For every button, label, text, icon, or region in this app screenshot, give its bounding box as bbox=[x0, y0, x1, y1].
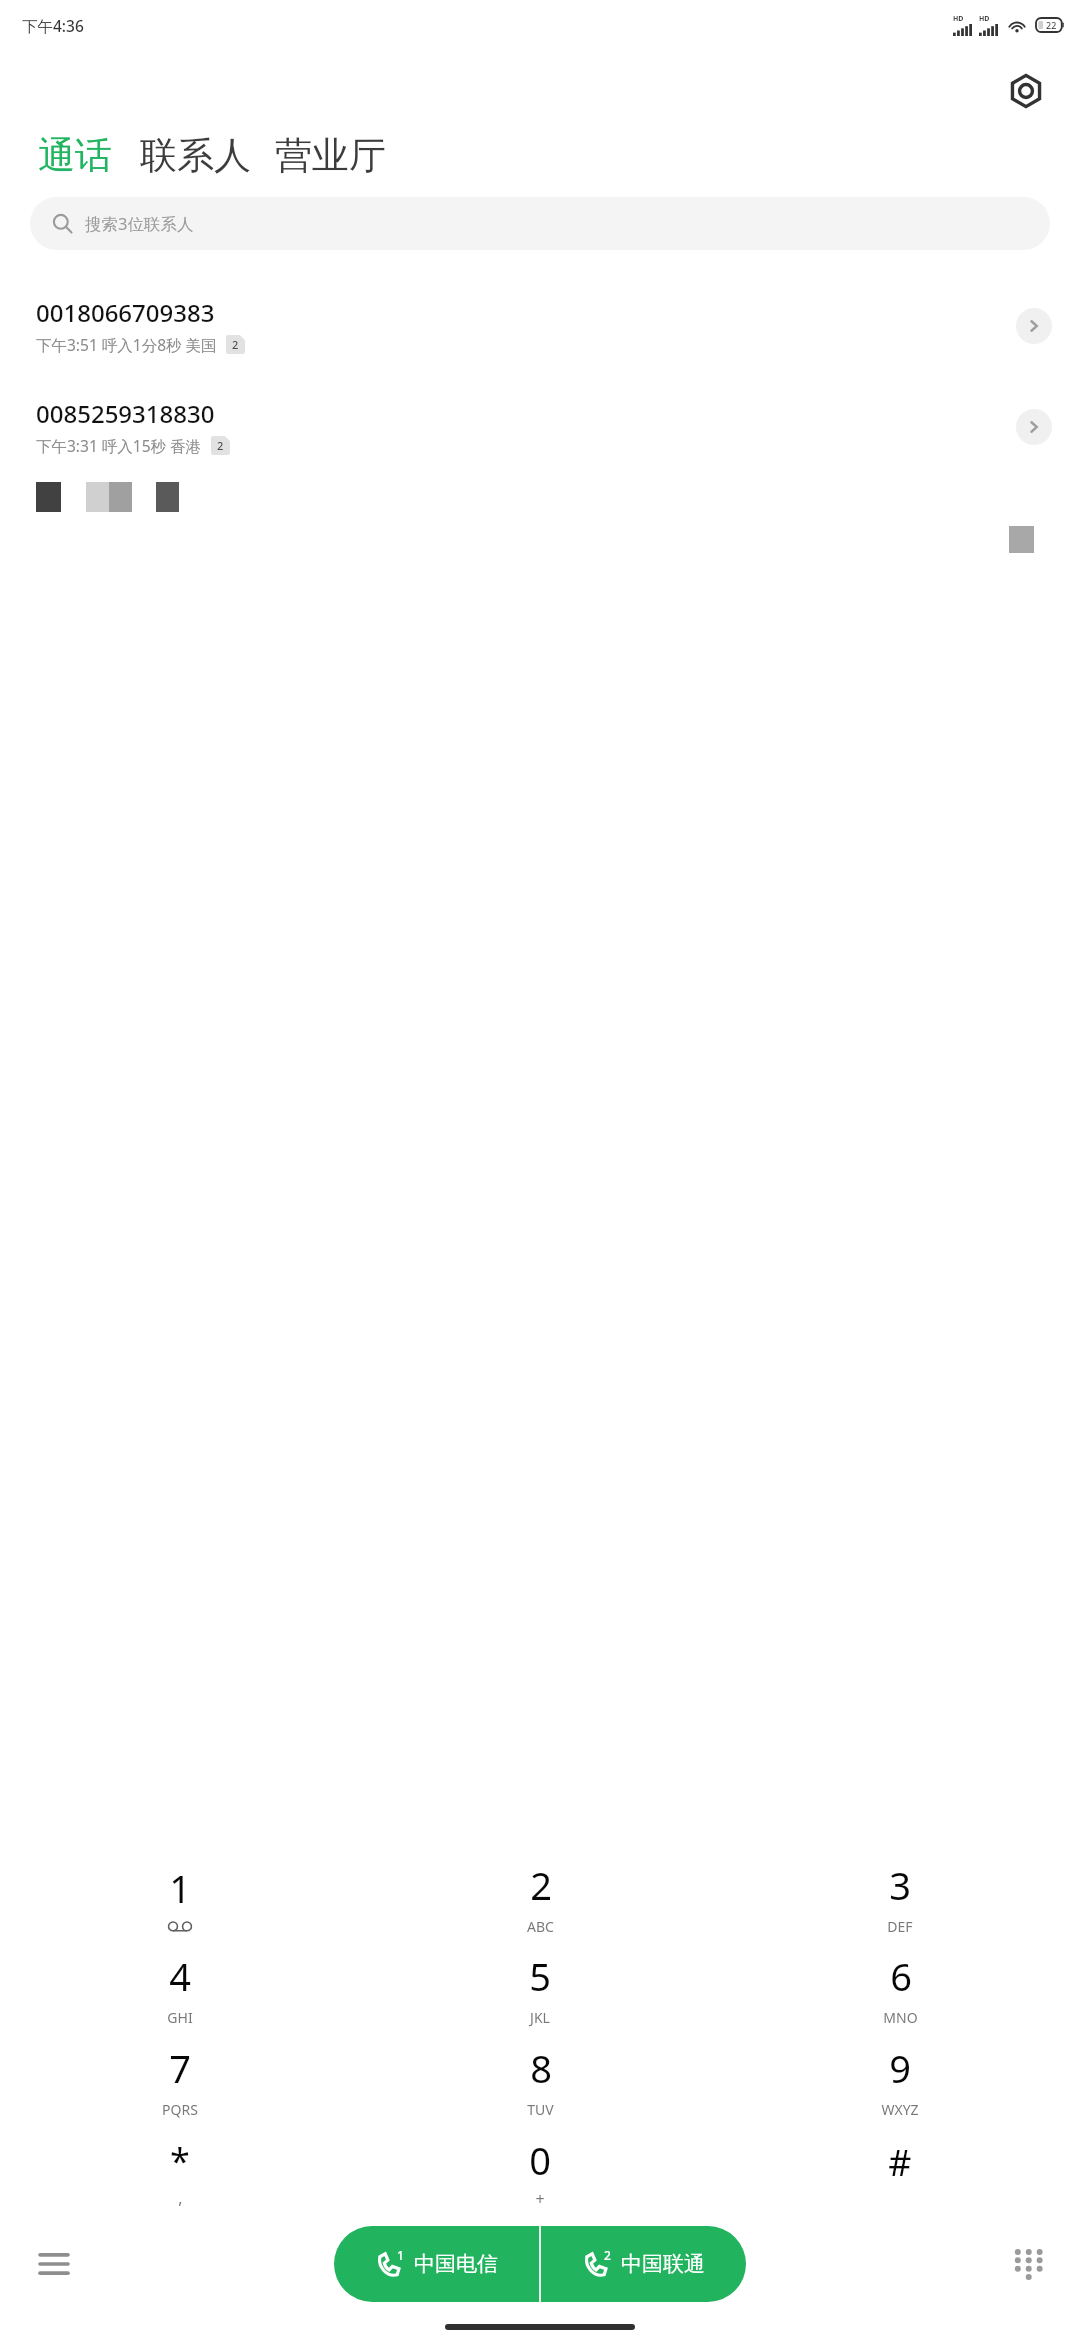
staticText: 联系人 bbox=[140, 132, 251, 179]
staticText: 1 bbox=[169, 1862, 191, 1914]
staticText: 0 bbox=[529, 2134, 551, 2186]
staticText: GHI bbox=[167, 2008, 193, 2027]
staticText: 2 bbox=[530, 1859, 552, 1911]
staticText: + bbox=[535, 2188, 545, 2210]
staticText: 6 bbox=[890, 1950, 912, 2002]
button[interactable]: 4 bbox=[0, 1943, 360, 2034]
button[interactable]: 0085259318830 bbox=[0, 391, 1080, 462]
staticText: 通话 bbox=[38, 132, 112, 179]
button[interactable]: 联系人 bbox=[140, 132, 251, 179]
staticText: # bbox=[888, 2138, 912, 2187]
staticText: TUV bbox=[527, 2100, 554, 2119]
staticText: 22 bbox=[1046, 19, 1057, 31]
staticText: ABC bbox=[527, 1917, 554, 1936]
staticText: 2 bbox=[232, 337, 239, 352]
staticText: WXYZ bbox=[881, 2100, 919, 2119]
staticText: MNO bbox=[883, 2008, 918, 2027]
button[interactable]: Settings bbox=[1002, 67, 1050, 115]
button[interactable]: 9 bbox=[720, 2034, 1080, 2126]
button[interactable]: 2 bbox=[541, 2226, 746, 2302]
staticText: 8 bbox=[530, 2042, 552, 2094]
staticText: 0018066709383 bbox=[36, 296, 215, 329]
button[interactable]: 1 bbox=[334, 2226, 539, 2302]
button[interactable]: 1 bbox=[0, 1852, 360, 1943]
staticText: JKL bbox=[530, 2008, 550, 2027]
button[interactable]: Dialpad bbox=[990, 2228, 1062, 2300]
button[interactable]: * bbox=[0, 2126, 360, 2218]
button[interactable]: 2 bbox=[360, 1852, 720, 1943]
button[interactable]: 营业厅 bbox=[275, 132, 386, 179]
button[interactable]: 搜索3位联系人 bbox=[30, 197, 1050, 250]
staticText: 中国联通 bbox=[621, 2251, 705, 2277]
staticText: 4 bbox=[169, 1950, 191, 2002]
button[interactable]: 0018066709383 bbox=[0, 290, 1080, 361]
staticText: 1 bbox=[397, 2247, 404, 2263]
staticText: 9 bbox=[889, 2042, 911, 2094]
staticText: * bbox=[170, 2136, 190, 2185]
staticText: DEF bbox=[887, 1917, 913, 1936]
button[interactable]: 通话 bbox=[38, 132, 112, 179]
staticText: 下午3:51 呼入1分8秒 美国 bbox=[36, 334, 217, 355]
button[interactable]: 6 bbox=[720, 1943, 1080, 2034]
button[interactable]: 5 bbox=[360, 1943, 720, 2034]
staticText: 中国电信 bbox=[414, 2251, 498, 2277]
button[interactable]: 7 bbox=[0, 2034, 360, 2126]
staticText: 7 bbox=[169, 2042, 191, 2094]
staticText: HD bbox=[953, 14, 964, 24]
staticText: 5 bbox=[529, 1950, 551, 2002]
staticText: 2 bbox=[604, 2247, 611, 2263]
button[interactable]: Call details bbox=[1016, 308, 1052, 344]
staticText: 营业厅 bbox=[275, 132, 386, 179]
staticText: 3 bbox=[889, 1859, 911, 1911]
staticText: 0085259318830 bbox=[36, 397, 215, 430]
staticText: 下午4:36 bbox=[22, 15, 84, 36]
button[interactable]: 8 bbox=[360, 2034, 720, 2126]
button[interactable]: 0 bbox=[360, 2126, 720, 2218]
staticText: HD bbox=[979, 14, 990, 24]
staticText: 搜索3位联系人 bbox=[85, 212, 194, 235]
staticText: 2 bbox=[217, 438, 224, 453]
button[interactable]: Menu bbox=[18, 2228, 90, 2300]
button[interactable]: # bbox=[720, 2126, 1080, 2218]
staticText: , bbox=[178, 2187, 183, 2209]
button[interactable]: 3 bbox=[720, 1852, 1080, 1943]
staticText: PQRS bbox=[162, 2100, 198, 2119]
button[interactable]: Call details bbox=[1016, 409, 1052, 445]
staticText: 下午3:31 呼入15秒 香港 bbox=[36, 435, 202, 456]
